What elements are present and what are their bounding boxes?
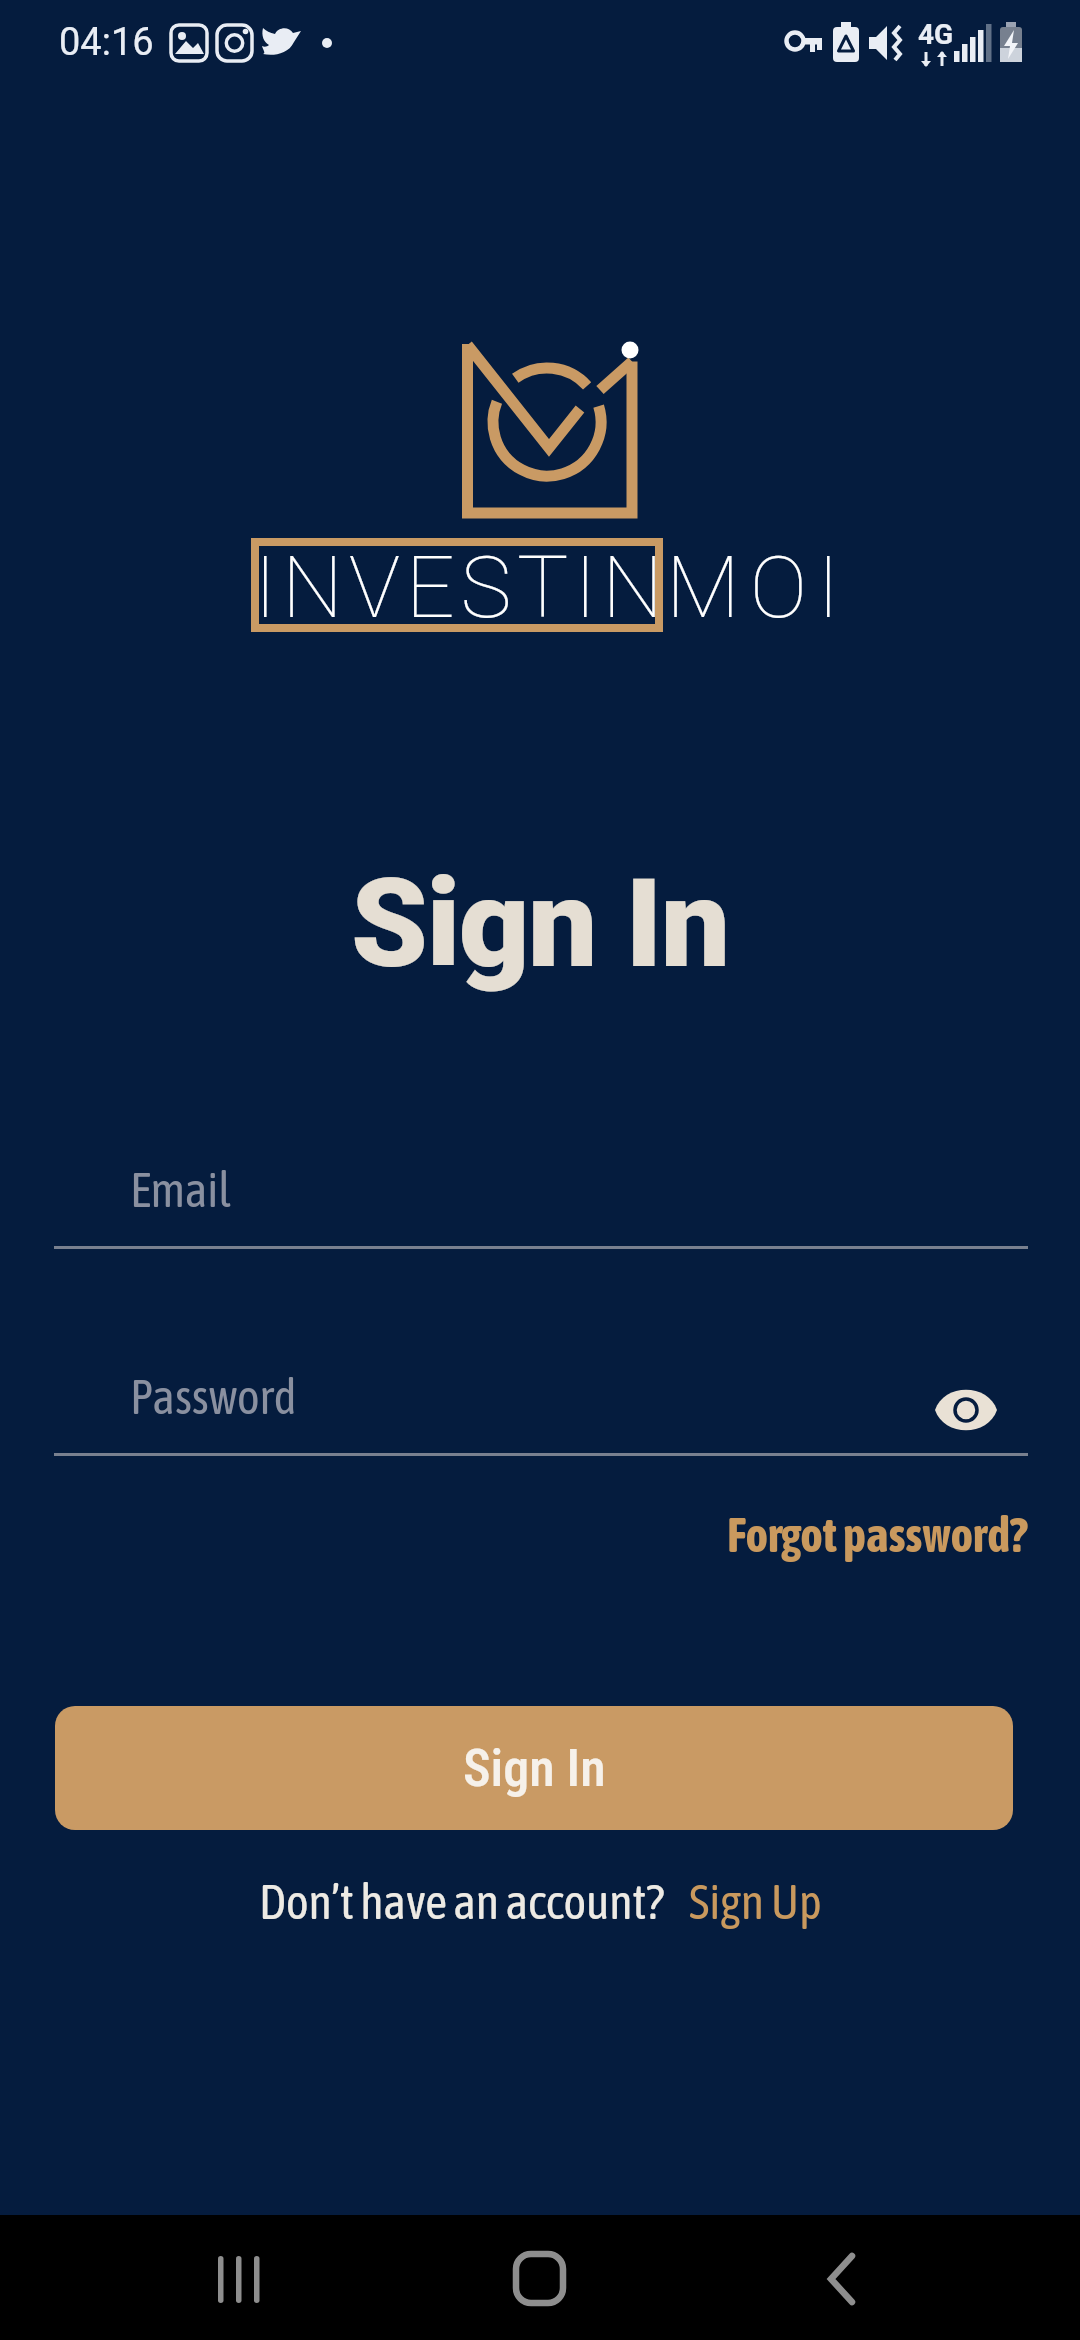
staticText: Forgot password? <box>727 1507 1028 1562</box>
staticText: 4G <box>918 18 954 51</box>
staticText: Email <box>130 1162 232 1217</box>
button[interactable]: Email <box>54 1140 1026 1250</box>
staticText: Sign In <box>351 852 729 996</box>
button[interactable]: Sign Up <box>689 1874 822 1929</box>
button[interactable]: Password <box>54 1347 1026 1457</box>
staticText: 04:16 <box>59 20 154 65</box>
button[interactable]: Sign In <box>55 1706 1013 1830</box>
button[interactable] <box>185 2235 295 2320</box>
button[interactable] <box>485 2235 595 2320</box>
button[interactable]: Forgot password? <box>727 1507 1028 1562</box>
button[interactable] <box>790 2235 900 2320</box>
staticText: Don’t have an account? <box>259 1874 664 1929</box>
staticText: INVESTIN <box>254 537 669 638</box>
staticText: Sign In <box>463 1738 606 1799</box>
button[interactable] <box>925 1378 1007 1442</box>
staticText: MOI <box>666 537 850 638</box>
staticText: Password <box>130 1369 297 1424</box>
staticText: Sign Up <box>689 1874 822 1929</box>
